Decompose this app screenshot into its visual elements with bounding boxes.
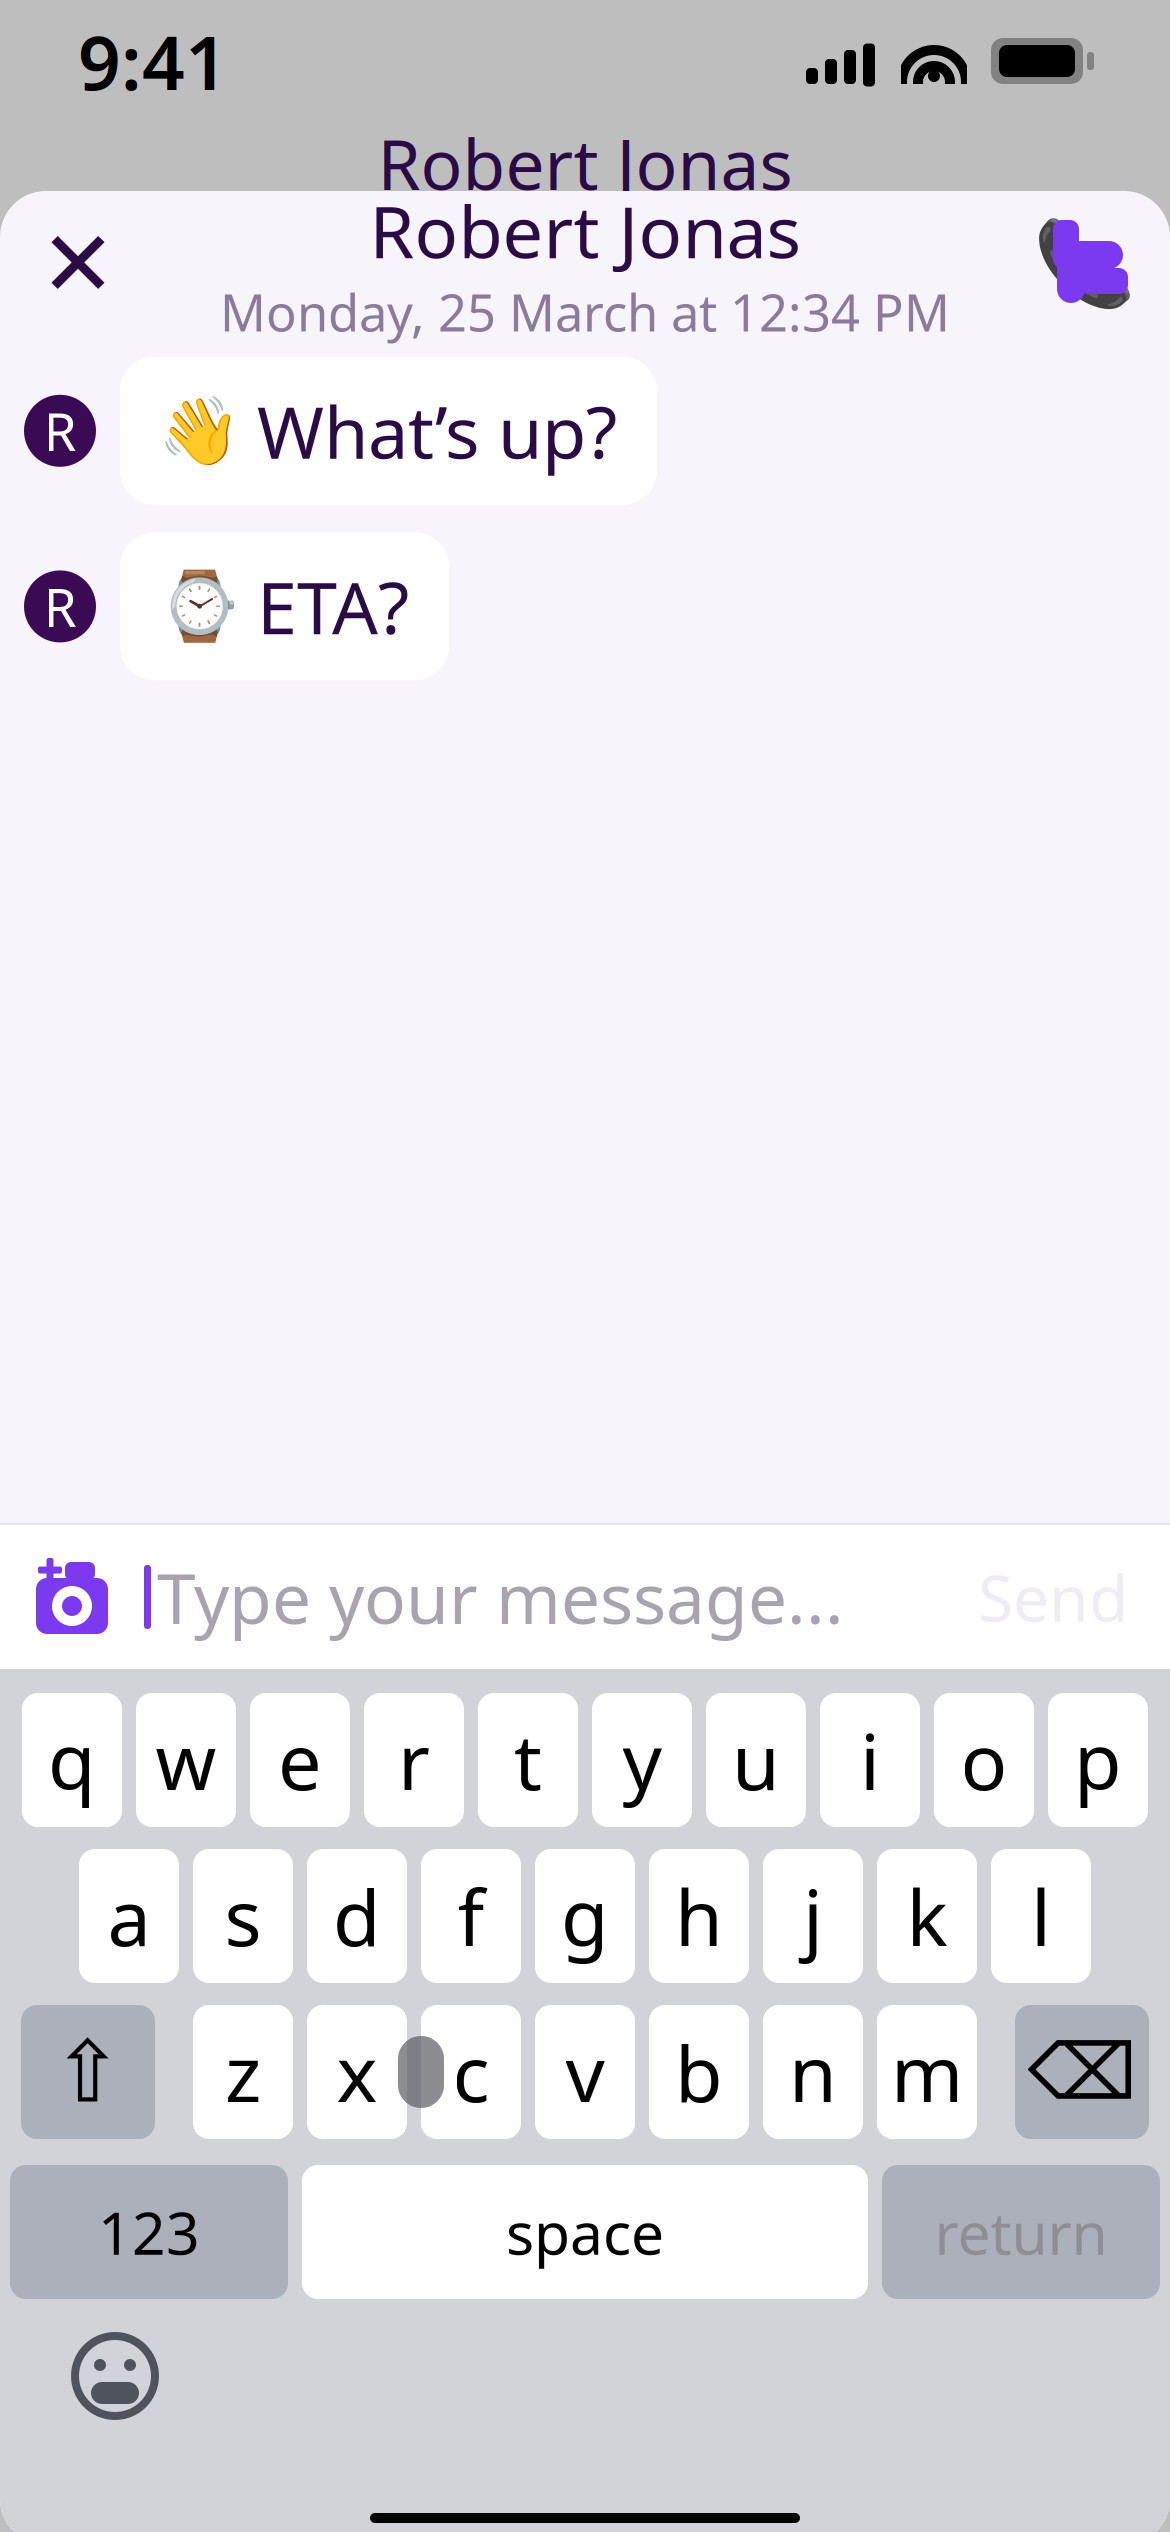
button[interactable]: Emoji [56,2317,174,2435]
staticText: d [333,1865,381,1967]
staticText: Robert Jonas [369,183,800,278]
button[interactable]: m [877,2005,977,2139]
staticText: Robert Jonas [377,117,792,209]
button[interactable]: Call [1028,208,1140,320]
staticText: What’s up? [257,383,617,479]
button[interactable]: a [79,1849,179,1983]
staticText: s [224,1865,261,1967]
button[interactable]: 👋 [120,357,657,505]
button[interactable]: Send [962,1532,1144,1661]
staticText: z [225,2021,261,2123]
staticText: space [506,2193,664,2271]
staticText: ⌫ [1027,2028,1136,2116]
staticText: 👋 [158,393,241,469]
staticText: k [906,1865,947,1967]
staticText: 123 [98,2193,200,2271]
staticText: 9:41 [78,11,228,111]
button[interactable]: v [535,2005,635,2139]
staticText: o [960,1709,1007,1811]
button[interactable]: t [478,1693,578,1827]
staticText: v [565,2021,604,2123]
button[interactable]: Add photo [22,1547,122,1647]
button[interactable]: j [763,1849,863,1983]
button[interactable]: 123 [10,2165,288,2299]
staticText: y [622,1709,661,1811]
button[interactable]: x [307,2005,407,2139]
button[interactable]: g [535,1849,635,1983]
button[interactable]: l [991,1849,1091,1983]
staticText: w [155,1709,216,1811]
button[interactable]: e [250,1693,350,1827]
staticText: Type your message... [157,1551,844,1643]
button[interactable]: d [307,1849,407,1983]
staticText: ⌚️ [158,568,241,644]
staticText: u [732,1709,780,1811]
button[interactable]: Delete [1015,2005,1149,2139]
staticText: R [43,395,76,466]
staticText: t [514,1709,542,1811]
staticText: p [1074,1709,1122,1811]
staticText: x [336,2021,377,2123]
staticText: Send [978,1554,1128,1639]
button[interactable]: c [421,2005,521,2139]
button[interactable]: b [649,2005,749,2139]
button[interactable]: ⌚️ [120,533,449,680]
button[interactable]: n [763,2005,863,2139]
staticText: R [43,571,76,642]
staticText: ⇧ [52,2024,124,2120]
button[interactable]: o [934,1693,1034,1827]
staticText: ✕ [40,212,116,315]
button[interactable]: Close [22,208,134,320]
staticText: b [675,2021,723,2123]
staticText: l [1031,1865,1051,1967]
staticText: 📞 [1032,217,1135,311]
staticText: e [278,1709,322,1811]
staticText: return [934,2193,1107,2271]
button[interactable]: q [22,1693,122,1827]
staticText: ETA? [257,559,409,654]
staticText: Monday, 25 March at 12:34 PM [220,278,950,345]
button[interactable]: r [364,1693,464,1827]
staticText: n [789,2021,837,2123]
staticText: c [452,2021,489,2123]
button[interactable]: Shift [21,2005,155,2139]
staticText: a [107,1865,150,1967]
staticText: m [891,2021,963,2123]
button[interactable]: z [193,2005,293,2139]
button[interactable]: w [136,1693,236,1827]
staticText: h [675,1865,723,1967]
button[interactable]: space [302,2165,868,2299]
staticText: j [803,1865,823,1967]
button[interactable]: return [882,2165,1160,2299]
button[interactable]: f [421,1849,521,1983]
button[interactable]: h [649,1849,749,1983]
button[interactable]: y [592,1693,692,1827]
staticText: f [457,1865,484,1967]
button[interactable]: k [877,1849,977,1983]
button[interactable]: p [1048,1693,1148,1827]
staticText: g [561,1865,609,1967]
staticText: q [48,1709,96,1811]
staticText: r [398,1709,430,1811]
button[interactable]: u [706,1693,806,1827]
button[interactable]: s [193,1849,293,1983]
button[interactable]: i [820,1693,920,1827]
staticText: i [860,1709,880,1811]
